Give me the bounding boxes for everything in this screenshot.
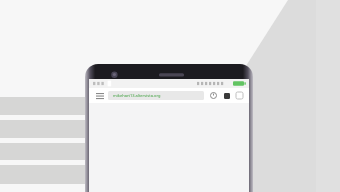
- button[interactable]: Tabs: [221, 90, 232, 101]
- button[interactable]: mikehart13.altervista.org: [108, 91, 204, 100]
- staticText: mikehart13.altervista.org: [113, 93, 161, 98]
- button[interactable]: More options: [234, 90, 245, 101]
- button[interactable]: Menu: [94, 90, 105, 101]
- button[interactable]: Reload: [208, 90, 219, 101]
